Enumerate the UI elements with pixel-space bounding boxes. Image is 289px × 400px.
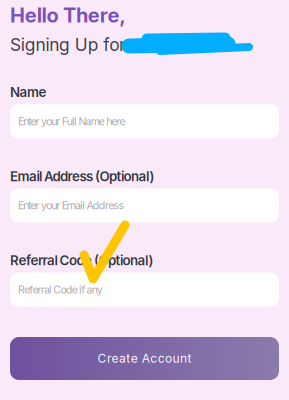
button[interactable]: Enter your Full Name here xyxy=(10,104,279,138)
staticText: Enter your Full Name here xyxy=(18,115,126,128)
button[interactable]: Create Account xyxy=(10,337,279,380)
staticText: Signing Up for xyxy=(10,34,126,55)
staticText: Create Account xyxy=(98,351,191,366)
button[interactable]: Referral Code if any xyxy=(10,273,279,307)
staticText: Email Address (Optional) xyxy=(10,168,154,184)
staticText: Hello There, xyxy=(10,3,126,27)
staticText: Referral Code (Optional) xyxy=(10,252,153,268)
button[interactable]: Enter your Email Address xyxy=(10,188,279,222)
staticText: Name xyxy=(10,84,46,100)
staticText: Referral Code if any xyxy=(18,283,103,296)
staticText: Enter your Email Address xyxy=(18,199,124,212)
